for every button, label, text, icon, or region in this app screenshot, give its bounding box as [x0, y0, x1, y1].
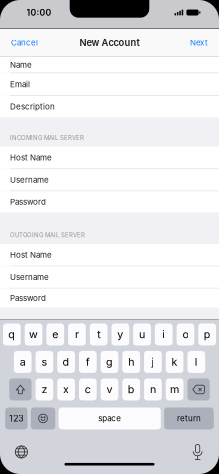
- staticText: d: [63, 355, 70, 368]
- staticText: q: [8, 328, 15, 341]
- button[interactable]: l: [187, 351, 205, 373]
- button[interactable]: e: [46, 323, 64, 345]
- button[interactable]: q: [3, 323, 21, 345]
- button[interactable]: Email: [0, 73, 219, 95]
- staticText: l: [195, 355, 198, 368]
- staticText: Next: [190, 38, 208, 48]
- button[interactable]: a: [14, 351, 32, 373]
- button[interactable]: 123: [5, 407, 27, 429]
- button[interactable]: [31, 407, 55, 429]
- staticText: x: [63, 383, 69, 396]
- staticText: h: [128, 355, 134, 368]
- button[interactable]: v: [101, 378, 118, 400]
- button[interactable]: Dictation: [185, 441, 211, 463]
- staticText: Cancel: [11, 38, 38, 48]
- staticText: m: [170, 383, 179, 396]
- staticText: Name: [10, 60, 32, 70]
- staticText: 123: [9, 413, 23, 424]
- staticText: n: [150, 383, 156, 396]
- button[interactable]: [187, 378, 210, 400]
- staticText: c: [85, 383, 91, 396]
- staticText: return: [177, 414, 201, 423]
- staticText: g: [106, 355, 113, 368]
- button[interactable]: Host Name: [0, 146, 219, 169]
- staticText: t: [97, 328, 100, 341]
- staticText: Description: [10, 102, 55, 112]
- staticText: a: [20, 355, 26, 368]
- staticText: space: [98, 414, 121, 423]
- button[interactable]: f: [79, 351, 97, 373]
- button[interactable]: Cancel: [0, 28, 49, 57]
- button[interactable]: Username: [0, 169, 219, 191]
- button[interactable]: y: [111, 323, 129, 345]
- staticText: y: [117, 328, 123, 341]
- button[interactable]: space: [59, 407, 161, 429]
- staticText: k: [172, 355, 178, 368]
- staticText: Host Name: [10, 153, 52, 162]
- button[interactable]: [9, 378, 31, 400]
- button[interactable]: h: [122, 351, 140, 373]
- button[interactable]: Password: [0, 288, 219, 307]
- staticText: s: [41, 355, 47, 368]
- staticText: 10:00: [26, 7, 51, 18]
- staticText: INCOMING MAIL SERVER: [10, 134, 84, 141]
- button[interactable]: p: [198, 323, 216, 345]
- staticText: Password: [10, 293, 46, 303]
- button[interactable]: x: [57, 378, 75, 400]
- button[interactable]: Next: [179, 28, 219, 57]
- staticText: b: [128, 383, 135, 396]
- staticText: j: [151, 355, 154, 368]
- staticText: Email: [10, 79, 30, 89]
- staticText: Username: [10, 175, 49, 185]
- button[interactable]: k: [166, 351, 183, 373]
- button[interactable]: Description: [0, 96, 219, 117]
- button[interactable]: s: [36, 351, 53, 373]
- staticText: w: [29, 328, 38, 341]
- staticText: Password: [10, 197, 46, 207]
- staticText: p: [204, 328, 211, 341]
- staticText: o: [182, 328, 188, 341]
- button[interactable]: Host Name: [0, 244, 219, 266]
- staticText: Username: [10, 272, 49, 282]
- staticText: z: [41, 383, 47, 396]
- staticText: OUTGOING MAIL SERVER: [10, 231, 85, 239]
- staticText: f: [86, 355, 90, 368]
- button[interactable]: return: [164, 407, 214, 429]
- button[interactable]: j: [144, 351, 162, 373]
- staticText: New Account: [79, 37, 139, 48]
- button[interactable]: Password: [0, 191, 219, 212]
- button[interactable]: t: [90, 323, 107, 345]
- button[interactable]: Next keyboard: [8, 441, 34, 463]
- button[interactable]: z: [35, 378, 53, 400]
- button[interactable]: g: [101, 351, 118, 373]
- button[interactable]: d: [57, 351, 75, 373]
- button[interactable]: w: [25, 323, 42, 345]
- button[interactable]: i: [155, 323, 173, 345]
- staticText: Host Name: [10, 250, 52, 260]
- button[interactable]: r: [68, 323, 86, 345]
- staticText: v: [106, 383, 112, 396]
- button[interactable]: c: [79, 378, 97, 400]
- staticText: u: [139, 328, 145, 341]
- button[interactable]: n: [144, 378, 162, 400]
- button[interactable]: Username: [0, 266, 219, 288]
- staticText: r: [75, 328, 79, 341]
- button[interactable]: b: [122, 378, 140, 400]
- button[interactable]: m: [166, 378, 183, 400]
- button[interactable]: u: [133, 323, 151, 345]
- button[interactable]: o: [177, 323, 194, 345]
- staticText: e: [52, 328, 58, 341]
- button[interactable]: Name: [0, 57, 219, 73]
- staticText: i: [162, 328, 165, 341]
